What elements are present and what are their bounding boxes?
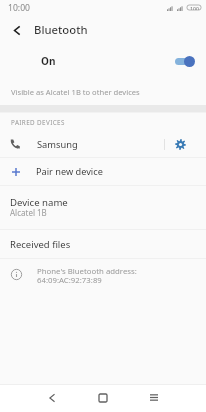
staticText: Phone's Bluetooth address: 64:09:AC:92:7… <box>37 266 137 285</box>
staticText: Samsung <box>37 138 78 151</box>
staticText: Bluetooth <box>34 22 88 37</box>
button[interactable]: Device name <box>0 189 206 226</box>
staticText: Received files <box>10 238 71 251</box>
button[interactable]: Back <box>1 18 33 42</box>
button[interactable]: Samsung device settings <box>165 131 196 157</box>
staticText: On <box>41 54 56 68</box>
staticText: Visible as Alcatel 1B to other devices <box>11 87 140 97</box>
button[interactable]: Pair new device <box>0 158 206 184</box>
staticText: Device name <box>10 196 68 209</box>
staticText: Alcatel 1B <box>10 207 47 218</box>
button[interactable]: Samsung <box>0 131 164 157</box>
staticText: PAIRED DEVICES <box>11 118 65 127</box>
staticText: 10:00 <box>8 2 30 14</box>
button[interactable]: Received files <box>0 230 206 258</box>
button[interactable]: Back <box>35 384 69 411</box>
staticText: Pair new device <box>36 165 103 178</box>
button[interactable]: Recent apps <box>137 384 171 411</box>
staticText: 100 <box>190 5 199 10</box>
button[interactable]: On <box>0 47 206 75</box>
button[interactable]: Home <box>86 384 120 411</box>
